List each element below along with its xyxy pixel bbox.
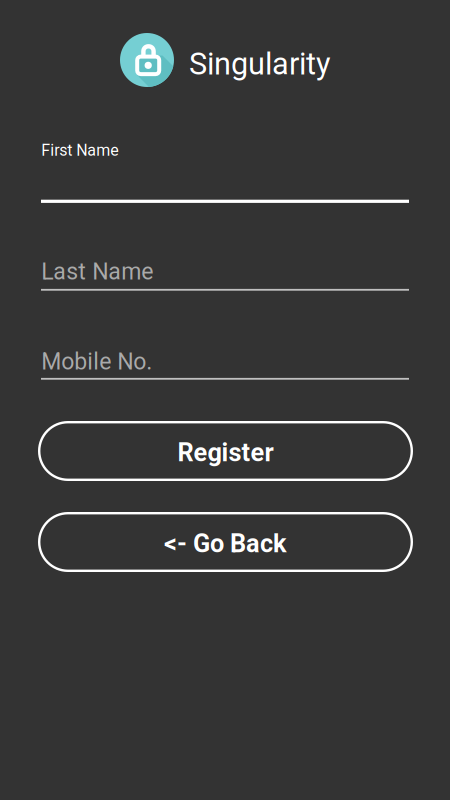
button[interactable]: <- Go Back: [38, 512, 413, 572]
button[interactable]: First Name: [41, 141, 409, 204]
button[interactable]: Mobile No.: [41, 348, 409, 382]
staticText: Register: [177, 438, 273, 467]
staticText: First Name: [41, 141, 118, 160]
staticText: <- Go Back: [164, 529, 287, 558]
staticText: Last Name: [41, 258, 153, 285]
button[interactable]: Last Name: [41, 258, 409, 293]
staticText: Mobile No.: [41, 348, 152, 375]
button[interactable]: Register: [38, 421, 413, 481]
staticText: Singularity: [189, 46, 331, 82]
